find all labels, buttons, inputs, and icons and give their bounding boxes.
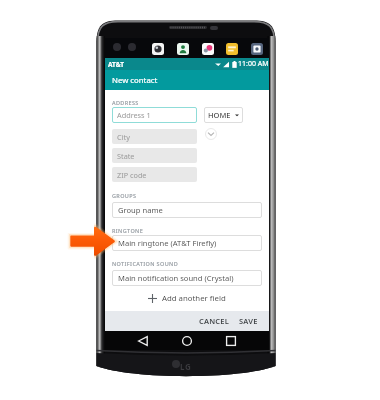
staticText: Main notification sound (Crystal) (118, 273, 234, 283)
staticText: LG (180, 361, 192, 372)
button[interactable]: HOME (204, 107, 243, 123)
button[interactable]: Group name (112, 202, 262, 218)
button[interactable]: Add another field (105, 291, 269, 306)
staticText: AT&T (108, 60, 124, 69)
staticText: Group name (118, 205, 163, 215)
button[interactable]: Main notification sound (Crystal) (112, 270, 262, 286)
button[interactable]: Back (128, 331, 158, 350)
staticText: CANCEL (199, 316, 230, 326)
button[interactable] (152, 43, 164, 55)
button[interactable]: SAVE (235, 313, 269, 329)
staticText: HOME (208, 110, 231, 120)
button[interactable]: ZIP code (112, 167, 197, 182)
button[interactable]: Expand address options (205, 128, 217, 140)
button[interactable]: New contact (105, 70, 269, 90)
staticText: Main ringtone (AT&T Firefly) (118, 238, 217, 248)
staticText: State (117, 151, 135, 161)
button[interactable] (226, 43, 238, 55)
staticText: City (117, 132, 130, 142)
button[interactable]: Main ringtone (AT&T Firefly) (112, 235, 262, 251)
staticText: Add another field (162, 293, 226, 304)
button[interactable] (177, 43, 189, 55)
button[interactable] (251, 43, 263, 55)
staticText: GROUPS (112, 192, 137, 199)
staticText: ADDRESS (112, 99, 139, 106)
staticText: New contact (112, 75, 158, 86)
button[interactable]: Home (172, 331, 202, 350)
staticText: Address 1 (117, 110, 151, 120)
button[interactable]: CANCEL (194, 313, 235, 329)
staticText: RINGTONE (112, 227, 144, 234)
button[interactable]: State (112, 148, 197, 163)
staticText: ZIP code (117, 170, 147, 180)
staticText: NOTIFICATION SOUND (112, 260, 179, 267)
button[interactable]: Address 1 (112, 107, 197, 123)
staticText: SAVE (239, 316, 258, 326)
button[interactable] (202, 43, 214, 55)
button[interactable]: City (112, 129, 197, 144)
staticText: 11:00 AM (238, 59, 269, 69)
button[interactable]: Recent apps (216, 331, 246, 350)
